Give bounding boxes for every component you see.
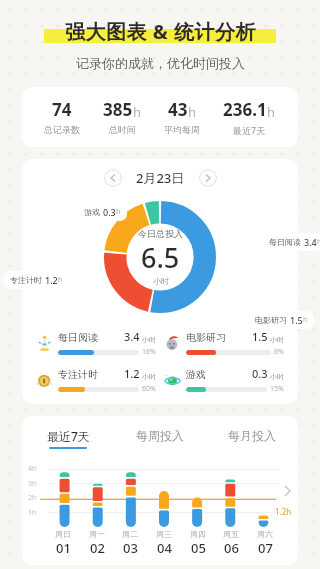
staticText: 今日总投入	[138, 228, 183, 239]
staticText: 60%	[142, 384, 156, 394]
staticText: 04	[157, 539, 172, 557]
button[interactable]: 每周投入	[114, 428, 206, 448]
staticText: 74	[52, 98, 72, 121]
staticText: 小时	[270, 372, 284, 381]
staticText: 每日阅读	[58, 331, 98, 344]
staticText: 每月投入	[228, 428, 276, 443]
staticText: 最近7天	[47, 428, 90, 444]
staticText: 3.4	[304, 236, 317, 248]
staticText: 每日阅读	[269, 237, 301, 247]
button[interactable]: 每日阅读	[32, 329, 160, 357]
staticText: 小时	[142, 372, 156, 381]
staticText: 1.5	[290, 314, 303, 326]
staticText: h	[58, 275, 63, 285]
staticText: 1h	[28, 508, 37, 518]
staticText: 周三	[156, 529, 172, 539]
staticText: 电影研习	[255, 315, 287, 325]
staticText: 16%	[142, 347, 156, 357]
button[interactable]: Previous day	[104, 169, 122, 187]
staticText: h	[188, 103, 197, 121]
staticText: 总记录数	[44, 124, 80, 135]
staticText: 07	[258, 539, 273, 557]
staticText: 平均每周	[164, 124, 200, 135]
staticText: 3h	[28, 479, 37, 489]
staticText: 游戏	[84, 207, 100, 217]
staticText: 385	[103, 98, 133, 121]
staticText: 6.5	[141, 239, 180, 276]
staticText: 03	[123, 539, 138, 557]
staticText: 06	[224, 539, 239, 557]
staticText: 15%	[270, 384, 284, 394]
button[interactable]: 最近7天	[22, 428, 114, 449]
staticText: 电影研习	[186, 331, 226, 344]
staticText: 3.4	[124, 329, 140, 344]
staticText: 记录你的成就，优化时间投入	[76, 55, 245, 71]
staticText: 1.2	[124, 366, 140, 381]
staticText: h	[267, 103, 276, 121]
staticText: 05	[191, 539, 206, 557]
staticText: 4h	[28, 464, 37, 474]
button[interactable]: 专注计时	[32, 366, 160, 394]
staticText: 周一	[89, 529, 105, 539]
staticText: 02	[90, 539, 105, 557]
staticText: 周六	[257, 529, 273, 539]
staticText: 专注计时	[58, 368, 98, 381]
button[interactable]: Next day	[199, 169, 217, 187]
staticText: 小时	[270, 335, 284, 344]
staticText: 强大图表 & 统计分析	[65, 18, 256, 45]
staticText: 43	[168, 98, 188, 121]
staticText: 小时	[153, 276, 169, 286]
staticText: 0.3	[252, 366, 268, 381]
staticText: 最近7天	[233, 124, 266, 136]
staticText: h	[303, 315, 308, 325]
staticText: h	[116, 207, 121, 217]
staticText: 总时间	[109, 124, 136, 135]
button[interactable]: 游戏	[160, 366, 288, 394]
button[interactable]: 每月投入	[206, 428, 298, 448]
staticText: 1.2h	[275, 506, 292, 517]
button[interactable]: 电影研习	[160, 329, 288, 357]
staticText: 1.2	[45, 274, 58, 286]
staticText: h	[317, 237, 320, 247]
staticText: 小时	[142, 335, 156, 344]
staticText: 专注计时	[10, 275, 42, 285]
staticText: 236.1	[223, 98, 267, 121]
staticText: 游戏	[186, 368, 206, 381]
staticText: 周二	[122, 529, 138, 539]
staticText: 每周投入	[136, 428, 184, 443]
staticText: 周四	[190, 529, 206, 539]
staticText: 1.5	[252, 329, 268, 344]
staticText: 2月23日	[136, 169, 185, 187]
staticText: 2h	[28, 493, 37, 503]
staticText: 周五	[223, 529, 239, 539]
staticText: 0.3	[103, 206, 116, 218]
staticText: 01	[56, 539, 71, 557]
staticText: 6%	[274, 347, 284, 357]
staticText: h	[133, 103, 142, 121]
staticText: 周日	[55, 529, 71, 539]
